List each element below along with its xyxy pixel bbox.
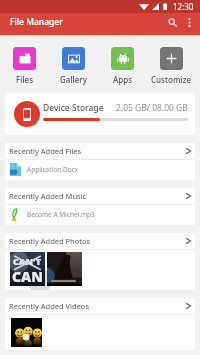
- staticText: Device Storage: [43, 102, 104, 114]
- button[interactable]: Device Storage: [5, 93, 195, 135]
- staticText: Gallery: [60, 74, 87, 85]
- button[interactable]: Search: [163, 13, 181, 31]
- button[interactable]: Apps: [98, 47, 147, 85]
- staticText: Become A Michel.mp3: [27, 210, 95, 219]
- staticText: 12:30: [173, 1, 194, 12]
- staticText: CAN'T: [13, 255, 42, 267]
- staticText: Application.Docx: [27, 165, 79, 174]
- staticText: Recently Added Photos: [9, 236, 91, 246]
- button[interactable]: Application.Docx: [5, 160, 195, 180]
- button[interactable]: [47, 252, 82, 286]
- button[interactable]: More options: [181, 14, 197, 30]
- button[interactable]: CAN'T: [10, 252, 45, 286]
- button[interactable]: [11, 318, 42, 347]
- staticText: CAN: [12, 267, 43, 286]
- button[interactable]: Recently Added Files: [5, 143, 195, 159]
- staticText: File Manager: [10, 16, 63, 28]
- button[interactable]: Become A Michel.mp3: [5, 205, 195, 225]
- button[interactable]: Recently Added Music: [5, 188, 195, 204]
- staticText: Recently Added Music: [9, 191, 87, 201]
- button[interactable]: Recently Added Videos: [5, 298, 195, 314]
- staticText: Recently Added Videos: [9, 301, 89, 311]
- button[interactable]: Files: [0, 47, 49, 85]
- button[interactable]: Gallery: [49, 47, 98, 85]
- staticText: Files: [16, 74, 34, 85]
- button[interactable]: Customize: [147, 47, 196, 85]
- staticText: 2.05 GB/ 08.00 GB: [116, 102, 188, 114]
- staticText: Apps: [113, 74, 133, 85]
- button[interactable]: Recently Added Photos: [5, 233, 195, 249]
- staticText: Recently Added Files: [9, 146, 82, 156]
- staticText: Customize: [151, 74, 192, 85]
